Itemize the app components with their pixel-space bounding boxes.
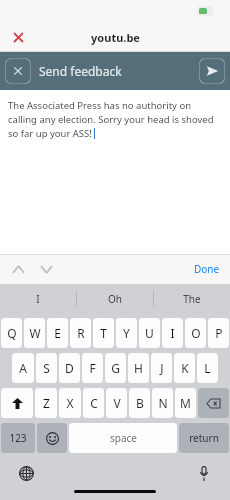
staticText: R (77, 325, 85, 341)
button[interactable]: V (106, 388, 127, 418)
staticText: so far up your ASS! (8, 127, 92, 140)
staticText: N (158, 395, 168, 411)
staticText: F (89, 360, 96, 376)
staticText: M (180, 395, 191, 411)
staticText: X (66, 395, 74, 411)
button[interactable]: P (208, 318, 229, 348)
button[interactable]: O (185, 318, 206, 348)
button[interactable]: Previous field (10, 261, 26, 277)
button[interactable]: E (47, 318, 68, 348)
staticText: T (100, 325, 107, 341)
staticText: Z (43, 395, 50, 411)
staticText: Done (194, 262, 220, 276)
staticText: V (113, 395, 121, 411)
staticText: I (36, 292, 40, 306)
button[interactable]: Done (194, 262, 220, 276)
button[interactable]: W (24, 318, 45, 348)
staticText: space (110, 431, 137, 445)
button[interactable]: L (197, 353, 218, 383)
staticText: youtu.be (91, 30, 140, 45)
button[interactable]: Emoji (37, 423, 67, 453)
button[interactable]: G (105, 353, 126, 383)
button[interactable]: I (0, 284, 76, 314)
staticText: 123 (9, 431, 27, 445)
staticText: The (183, 292, 201, 306)
button[interactable]: D (59, 353, 80, 383)
button[interactable]: T (93, 318, 114, 348)
button[interactable]: S (36, 353, 57, 383)
button[interactable]: X (59, 388, 81, 418)
button[interactable]: Y (116, 318, 137, 348)
staticText: D (65, 360, 74, 376)
staticText: calling any election. Sorry your head is… (8, 113, 214, 126)
button[interactable]: Backspace (198, 388, 229, 418)
button[interactable]: Dismiss feedback (5, 58, 31, 84)
button[interactable]: Shift (1, 388, 33, 418)
staticText: Q (7, 325, 17, 341)
button[interactable]: M (175, 388, 196, 418)
button[interactable]: Close (6, 25, 30, 49)
button[interactable]: I (162, 318, 183, 348)
staticText: L (204, 360, 211, 376)
staticText: J (160, 360, 164, 376)
staticText: E (54, 325, 61, 341)
button[interactable]: Switch keyboard (16, 463, 36, 483)
staticText: The Associated Press has no authority on (8, 99, 192, 112)
staticText: return (189, 431, 219, 445)
staticText: G (111, 360, 120, 376)
button[interactable]: H (128, 353, 149, 383)
staticText: Y (123, 325, 130, 341)
button[interactable]: Send feedback (39, 63, 199, 79)
staticText: K (181, 360, 189, 376)
button[interactable]: Q (1, 318, 22, 348)
staticText: I (170, 325, 175, 341)
button[interactable]: space (69, 423, 177, 453)
button[interactable]: return (179, 423, 229, 453)
staticText: U (145, 325, 154, 341)
staticText: H (134, 360, 143, 376)
button[interactable]: N (152, 388, 173, 418)
staticText: Oh (108, 292, 122, 306)
button[interactable]: Oh (77, 284, 153, 314)
button[interactable]: C (83, 388, 104, 418)
button[interactable]: F (82, 353, 103, 383)
staticText: A (19, 360, 27, 376)
button[interactable]: B (129, 388, 150, 418)
button[interactable]: A (12, 353, 34, 383)
staticText: P (215, 325, 223, 341)
button[interactable]: U (139, 318, 160, 348)
staticText: O (191, 325, 201, 341)
button[interactable]: K (174, 353, 195, 383)
staticText: Send feedback (39, 63, 122, 79)
button[interactable]: Next field (38, 261, 54, 277)
button[interactable]: Z (35, 388, 57, 418)
button[interactable]: Send (199, 58, 225, 84)
button[interactable]: 123 (1, 423, 35, 453)
staticText: W (29, 325, 41, 341)
staticText: C (90, 395, 98, 411)
staticText: S (43, 360, 50, 376)
staticText: B (136, 395, 144, 411)
button[interactable]: The (154, 284, 230, 314)
button[interactable]: R (70, 318, 91, 348)
button[interactable]: Dictation (194, 463, 214, 483)
button[interactable]: J (151, 353, 172, 383)
